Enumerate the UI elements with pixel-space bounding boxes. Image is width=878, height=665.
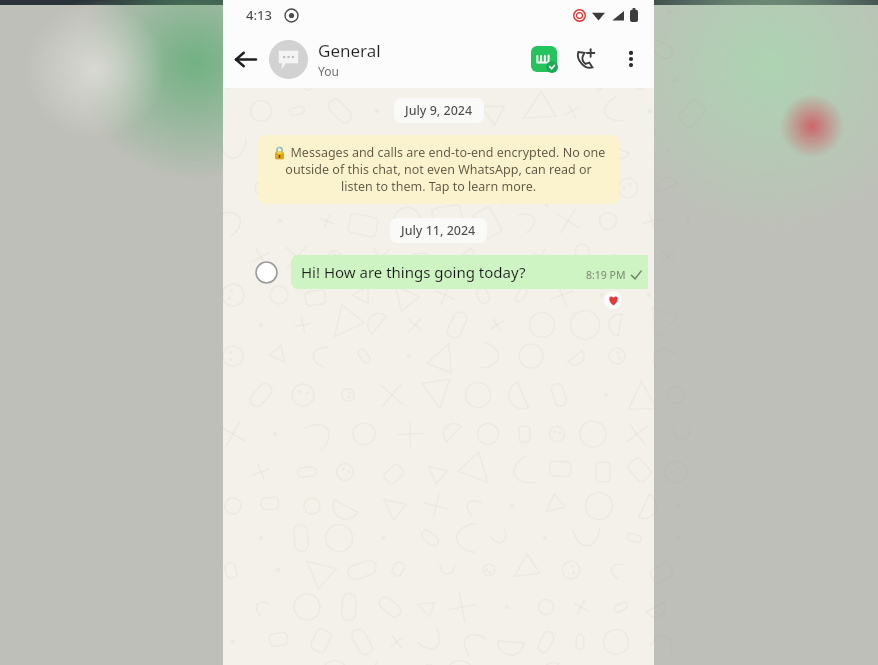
button[interactable]: Heart reaction: [604, 291, 622, 309]
button[interactable]: General: [269, 30, 522, 88]
button[interactable]: Back: [223, 37, 267, 81]
staticText: 🔒 Messages and calls are end-to-end encr…: [270, 144, 607, 195]
staticText: 4:13: [246, 6, 272, 24]
button[interactable]: Hi! How are things going today?: [223, 255, 654, 289]
staticText: 8:19 PM: [586, 268, 626, 282]
button[interactable]: More options: [610, 38, 652, 80]
staticText: You: [318, 63, 339, 79]
staticText: General: [318, 39, 381, 62]
staticText: July 11, 2024: [401, 222, 476, 239]
staticText: Hi! How are things going today?: [301, 262, 526, 282]
button[interactable]: Add call: [566, 37, 610, 81]
button[interactable]: July 9, 2024: [394, 98, 484, 123]
staticText: July 9, 2024: [405, 102, 473, 119]
button[interactable]: 🔒 Messages and calls are end-to-end encr…: [258, 135, 619, 204]
button[interactable]: WhatsApp Business: [522, 37, 566, 81]
button[interactable]: July 11, 2024: [390, 218, 487, 243]
